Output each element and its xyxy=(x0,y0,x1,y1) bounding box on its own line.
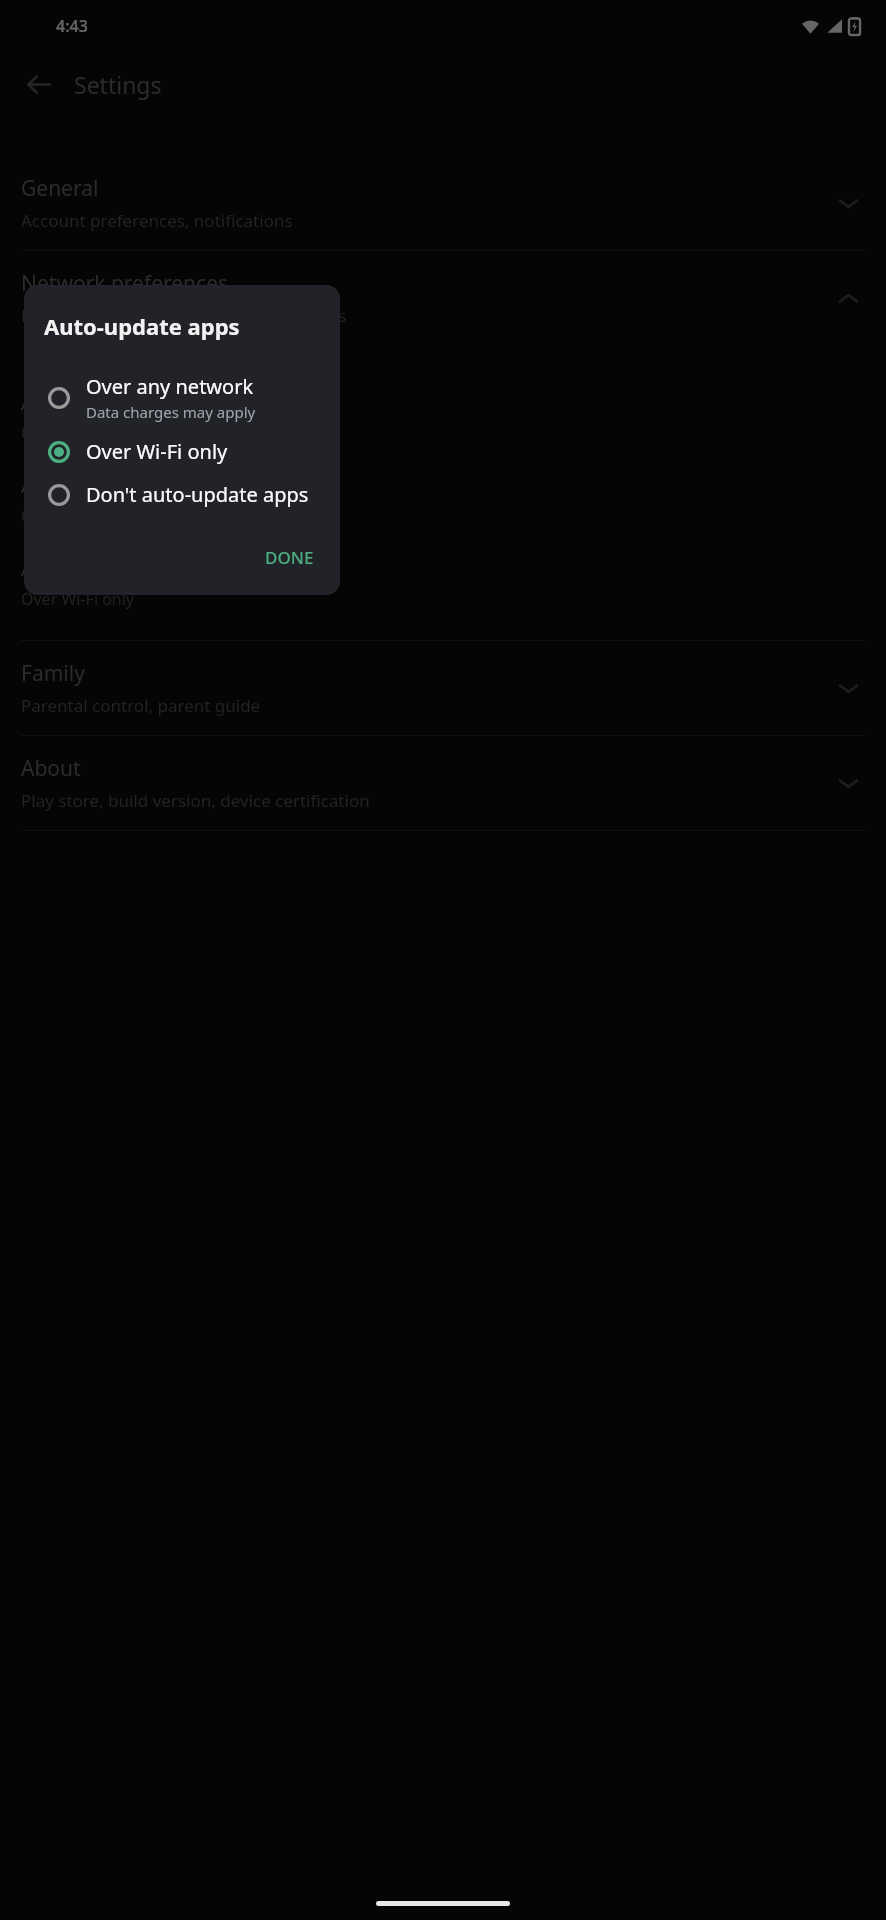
button[interactable]: About xyxy=(0,736,886,830)
staticText: Play store, build version, device certif… xyxy=(21,789,370,812)
staticText: Over any network xyxy=(86,373,254,400)
staticText: Auto-update apps xyxy=(44,311,240,341)
button[interactable]: Auto-update apps xyxy=(0,458,886,541)
staticText: Don't auto-update apps xyxy=(86,481,309,508)
button[interactable]: Back xyxy=(14,60,62,108)
staticText: Auto-play videos xyxy=(21,555,177,582)
staticText: Data charges may apply xyxy=(86,402,256,422)
button[interactable]: DONE xyxy=(253,538,326,577)
button[interactable]: Network preferences xyxy=(0,251,886,345)
staticText: Data usage for downloads, auto-updates xyxy=(21,304,347,327)
staticText: Family xyxy=(21,659,85,688)
staticText: Auto-update apps xyxy=(21,472,190,499)
staticText: Parental control, parent guide xyxy=(21,694,261,717)
staticText: Settings xyxy=(74,69,162,100)
staticText: 4:43 xyxy=(56,15,88,37)
button[interactable]: Family xyxy=(0,641,886,735)
button[interactable]: Over any network xyxy=(24,365,340,430)
staticText: Over Wi-Fi only xyxy=(21,505,135,527)
staticText: General xyxy=(21,174,99,203)
button[interactable]: Auto-play videos xyxy=(0,541,886,624)
button[interactable]: Over Wi-Fi only xyxy=(24,430,340,473)
button[interactable]: Don't auto-update apps xyxy=(24,473,340,516)
staticText: Over Wi-Fi only xyxy=(21,422,135,444)
staticText: About xyxy=(21,754,81,783)
staticText: Over Wi-Fi only xyxy=(21,588,135,610)
staticText: Over Wi-Fi only xyxy=(86,438,228,465)
staticText: App download preference xyxy=(21,389,264,416)
staticText: Account preferences, notifications xyxy=(21,209,293,232)
staticText: Network preferences xyxy=(21,269,229,298)
staticText: DONE xyxy=(265,546,314,569)
button[interactable]: App download preference xyxy=(0,375,886,458)
button[interactable]: General xyxy=(0,156,886,250)
